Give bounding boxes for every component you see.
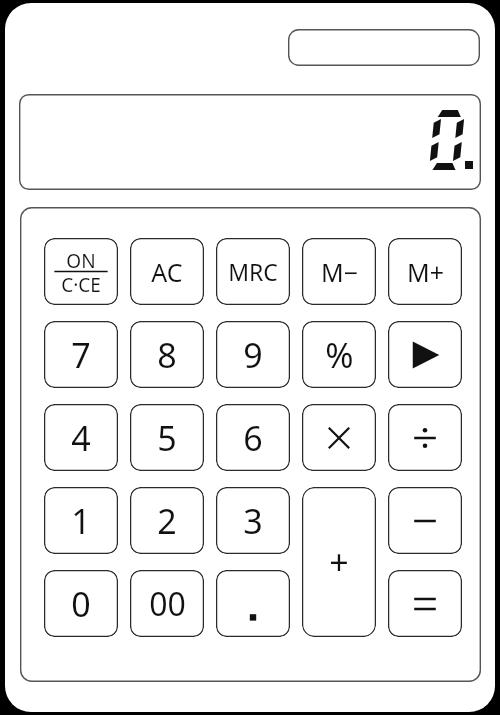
button[interactable]: 7 — [44, 321, 118, 388]
staticText: C·CE — [61, 272, 101, 298]
button[interactable]: MRC — [216, 238, 290, 305]
button[interactable]: 2 — [130, 487, 204, 554]
staticText: 00 — [149, 582, 186, 626]
button[interactable]: AC — [130, 238, 204, 305]
button[interactable]: Percent — [302, 321, 376, 388]
button[interactable]: 0 — [44, 570, 118, 637]
staticText: 1 — [71, 498, 91, 544]
staticText: 7 — [71, 332, 91, 378]
button[interactable]: Divide — [388, 404, 462, 471]
staticText: + — [329, 539, 349, 585]
button[interactable]: M minus — [302, 238, 376, 305]
button[interactable]: Play — [388, 321, 462, 388]
staticText: 5 — [157, 415, 177, 461]
staticText: 6 — [243, 415, 263, 461]
button[interactable]: 8 — [130, 321, 204, 388]
staticText: 3 — [243, 498, 263, 544]
button[interactable]: Equals — [388, 570, 462, 637]
button[interactable]: Plus — [302, 487, 376, 637]
staticText: % — [325, 332, 354, 378]
staticText: MRC — [228, 256, 278, 287]
button[interactable]: 1 — [44, 487, 118, 554]
button[interactable]: Decimal point — [216, 570, 290, 637]
button[interactable]: Minus — [388, 487, 462, 554]
staticText: 8 — [157, 332, 177, 378]
staticText: 2 — [157, 498, 177, 544]
staticText: 0 — [71, 581, 91, 627]
staticText: 4 — [71, 415, 91, 461]
button[interactable]: M plus — [388, 238, 462, 305]
button[interactable]: 6 — [216, 404, 290, 471]
staticText: M+ — [407, 255, 444, 289]
staticText: 9 — [243, 332, 263, 378]
staticText: M− — [321, 255, 358, 289]
staticText: ON — [66, 248, 96, 274]
button[interactable]: 4 — [44, 404, 118, 471]
button[interactable]: ON C CE — [44, 238, 118, 305]
button[interactable]: Double zero — [130, 570, 204, 637]
button[interactable]: 9 — [216, 321, 290, 388]
button[interactable]: Multiply — [302, 404, 376, 471]
staticText: AC — [151, 255, 183, 289]
button[interactable]: 3 — [216, 487, 290, 554]
button[interactable]: 5 — [130, 404, 204, 471]
